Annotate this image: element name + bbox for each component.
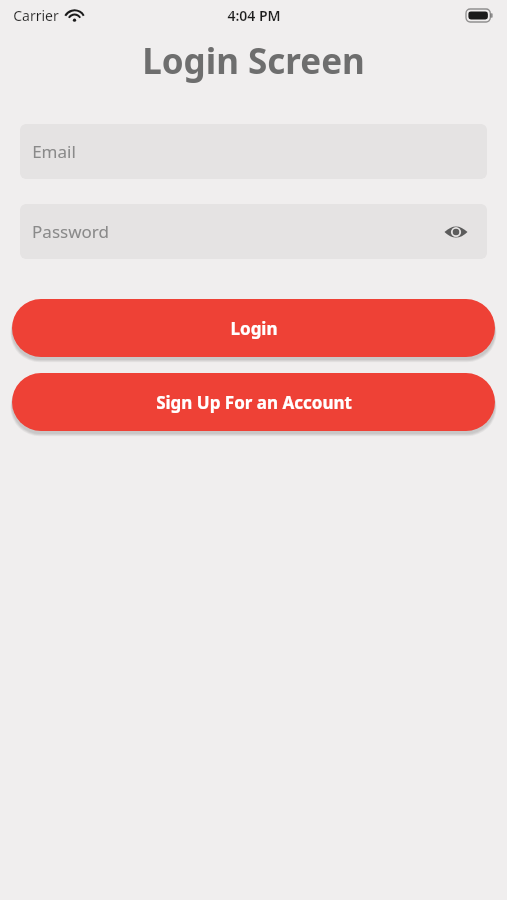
- button[interactable]: Password: [20, 204, 487, 259]
- staticText: Login: [230, 317, 278, 340]
- staticText: 4:04 PM: [227, 6, 281, 25]
- staticText: Email: [32, 140, 76, 163]
- button[interactable]: Sign Up For an Account: [12, 373, 495, 431]
- staticText: Password: [32, 220, 109, 243]
- button[interactable]: Show password: [439, 215, 473, 249]
- button[interactable]: Email: [20, 124, 487, 179]
- button[interactable]: Login: [12, 299, 495, 357]
- staticText: Sign Up For an Account: [156, 391, 352, 414]
- staticText: Login Screen: [142, 37, 365, 85]
- staticText: Carrier: [13, 6, 59, 25]
